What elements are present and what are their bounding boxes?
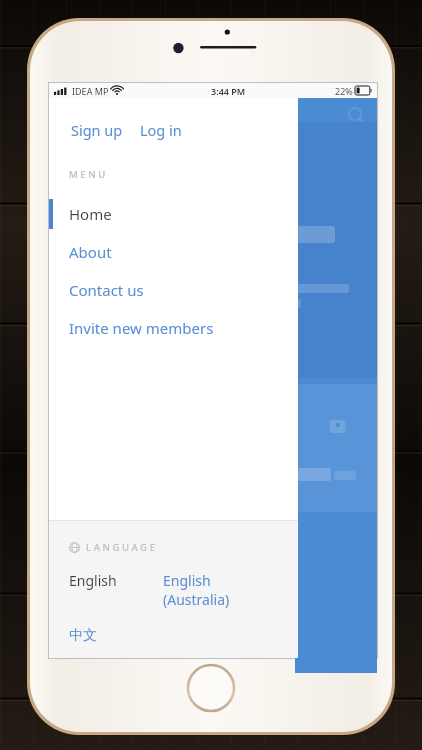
button[interactable]: Log in xyxy=(138,116,184,144)
staticText: About xyxy=(69,242,112,262)
button[interactable]: Contact us xyxy=(49,271,298,309)
button[interactable]: 中文 xyxy=(69,624,97,648)
staticText: 3:44 PM xyxy=(211,85,246,97)
staticText: Home xyxy=(69,204,112,224)
button[interactable]: English xyxy=(69,568,139,593)
staticText: Contact us xyxy=(69,280,144,300)
button[interactable]: Invite new members xyxy=(49,309,298,347)
staticText: Sign up xyxy=(71,120,123,140)
button[interactable]: Home xyxy=(49,195,298,233)
staticText: English xyxy=(69,571,117,590)
staticText: LANGUAGE xyxy=(86,541,158,554)
staticText: 22% xyxy=(335,85,353,97)
staticText: MENU xyxy=(69,168,108,181)
staticText: Invite new members xyxy=(69,318,214,338)
button[interactable]: Content behind menu xyxy=(295,98,377,673)
staticText: IDEA MP xyxy=(72,85,109,97)
staticText: English (Australia) xyxy=(163,571,230,609)
button[interactable]: English (Australia) xyxy=(163,568,230,612)
button[interactable]: Sign up xyxy=(69,116,125,144)
staticText: Log in xyxy=(140,120,182,140)
button[interactable]: About xyxy=(49,233,298,271)
staticText: 中文 xyxy=(69,627,97,645)
